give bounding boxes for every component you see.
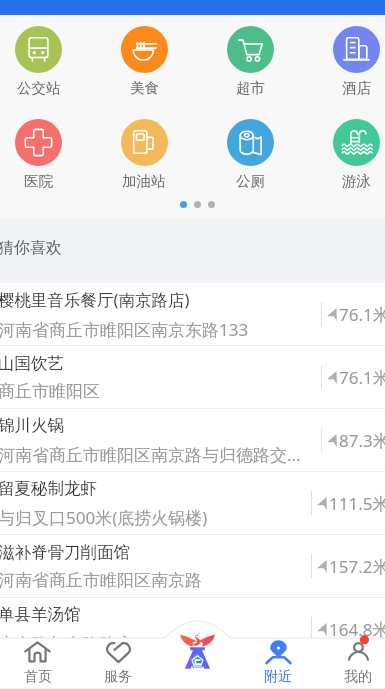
- button[interactable]: 服务: [78, 638, 158, 689]
- staticText: 76.1米: [339, 303, 385, 326]
- staticText: 单县羊汤馆: [0, 604, 81, 625]
- staticText: 河南省商丘市睢阳区南京路: [0, 570, 202, 591]
- staticText: 首页: [24, 668, 52, 686]
- button[interactable]: 樱桃里音乐餐厅(南京路店): [0, 283, 385, 346]
- button[interactable]: 首页: [180, 632, 215, 669]
- staticText: 我的: [344, 668, 372, 686]
- staticText: 锦川火锅: [0, 415, 64, 436]
- staticText: 76.1米: [339, 366, 385, 389]
- staticText: 留夏秘制龙虾: [0, 478, 97, 499]
- staticText: 公厕: [236, 172, 265, 190]
- staticText: 樱桃里音乐餐厅(南京路店): [0, 288, 190, 311]
- staticText: 157.2米: [329, 555, 385, 578]
- button[interactable]: 留夏秘制龙虾: [0, 472, 385, 535]
- button[interactable]: 滋补脊骨刀削面馆: [0, 535, 385, 598]
- staticText: 87.3米: [339, 429, 385, 452]
- button[interactable]: 首页: [0, 638, 78, 689]
- staticText: 山国饮艺: [0, 353, 64, 374]
- staticText: 酒店: [342, 79, 371, 97]
- button[interactable]: 美食: [91, 26, 197, 97]
- staticText: 加油站: [122, 172, 166, 190]
- staticText: 南京路与兴隆路交口…: [0, 632, 165, 655]
- staticText: 滋补脊骨刀削面馆: [0, 542, 130, 563]
- button[interactable]: 山国饮艺: [0, 346, 385, 409]
- staticText: 美食: [130, 79, 159, 97]
- button[interactable]: 附近: [238, 638, 318, 689]
- button[interactable]: 公厕: [197, 119, 303, 190]
- staticText: 超市: [236, 79, 265, 97]
- button[interactable]: 游泳: [303, 119, 385, 190]
- staticText: 游泳: [342, 172, 371, 190]
- button[interactable]: 我的: [318, 638, 385, 689]
- button[interactable]: 超市: [197, 26, 303, 97]
- staticText: 医院: [24, 172, 53, 190]
- button[interactable]: 医院: [0, 119, 91, 190]
- staticText: 河南省商丘市睢阳区南京路与归德路交…: [0, 443, 301, 466]
- button[interactable]: 单县羊汤馆: [0, 598, 385, 661]
- staticText: 河南省商丘市睢阳区南京东路133: [0, 318, 249, 341]
- staticText: 111.5米: [329, 492, 385, 515]
- button[interactable]: 公交站: [0, 26, 91, 97]
- staticText: 164.8米: [329, 618, 385, 641]
- staticText: 附近: [264, 668, 292, 686]
- staticText: 商丘市睢阳区: [0, 381, 100, 402]
- staticText: 猜你喜欢: [0, 238, 62, 258]
- button[interactable]: 加油站: [91, 119, 197, 190]
- staticText: 服务: [104, 668, 132, 686]
- button[interactable]: 酒店: [303, 26, 385, 97]
- button[interactable]: 锦川火锅: [0, 409, 385, 472]
- staticText: 与归叉口500米(底捞火锅楼): [0, 506, 208, 529]
- staticText: 公交站: [17, 79, 61, 97]
